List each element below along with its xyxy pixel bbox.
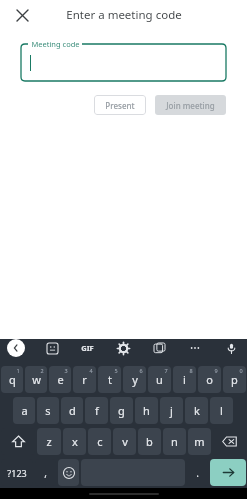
staticText: j xyxy=(170,403,173,418)
staticText: ?123 xyxy=(7,467,27,479)
button[interactable]: f xyxy=(85,397,108,424)
staticText: l xyxy=(220,403,223,418)
button[interactable]: y xyxy=(123,366,146,393)
button[interactable]: More options xyxy=(186,339,204,357)
staticText: 2 xyxy=(40,367,44,374)
button[interactable]: e xyxy=(49,366,71,393)
staticText: t xyxy=(108,372,112,387)
button[interactable]: o xyxy=(198,366,221,393)
button[interactable]: h xyxy=(135,397,158,424)
staticText: f xyxy=(95,403,99,418)
button[interactable]: Close xyxy=(8,1,36,29)
staticText: d xyxy=(69,403,76,418)
staticText: 7 xyxy=(164,367,168,374)
staticText: x xyxy=(72,434,78,449)
staticText: , xyxy=(44,466,47,480)
staticText: 6 xyxy=(139,367,143,374)
button[interactable]: t xyxy=(98,366,121,393)
staticText: i xyxy=(183,372,186,387)
staticText: r xyxy=(82,372,87,387)
button[interactable]: Join meeting xyxy=(155,95,226,115)
button[interactable]: GIF xyxy=(79,341,96,355)
staticText: k xyxy=(194,403,200,418)
staticText: Enter a meeting code xyxy=(66,7,182,23)
staticText: 0 xyxy=(239,367,243,374)
button[interactable]: Voice input xyxy=(222,339,240,357)
staticText: 1 xyxy=(16,367,20,374)
button[interactable]: k xyxy=(185,397,208,424)
button[interactable]: Emoji xyxy=(58,459,79,486)
button[interactable]: d xyxy=(61,397,83,424)
button[interactable]: Backspace xyxy=(213,428,246,455)
button[interactable]: Symbols xyxy=(1,459,33,486)
staticText: s xyxy=(45,403,51,418)
staticText: n xyxy=(171,434,178,449)
button[interactable]: Period xyxy=(187,459,208,486)
staticText: h xyxy=(143,403,150,418)
staticText: b xyxy=(146,434,153,449)
button[interactable]: Sticker xyxy=(43,339,61,357)
staticText: p xyxy=(231,372,238,387)
button[interactable]: Settings xyxy=(114,339,132,357)
button[interactable]: v xyxy=(113,428,136,455)
button[interactable]: Enter xyxy=(210,459,246,486)
staticText: v xyxy=(122,434,128,449)
button[interactable]: c xyxy=(88,428,111,455)
staticText: 5 xyxy=(114,367,118,374)
staticText: o xyxy=(206,372,213,387)
staticText: y xyxy=(132,372,138,387)
staticText: a xyxy=(21,403,28,418)
button[interactable]: Present xyxy=(94,95,146,115)
button[interactable]: Shift xyxy=(1,428,35,455)
staticText: w xyxy=(32,372,41,387)
staticText: 8 xyxy=(189,367,193,374)
button[interactable]: z xyxy=(37,428,61,455)
staticText: Meeting code xyxy=(31,39,80,49)
button[interactable]: u xyxy=(148,366,171,393)
button[interactable]: m xyxy=(188,428,211,455)
staticText: GIF xyxy=(81,343,94,353)
button[interactable]: Comma xyxy=(35,459,56,486)
button[interactable]: w xyxy=(25,366,47,393)
staticText: c xyxy=(97,434,103,449)
button[interactable]: g xyxy=(110,397,133,424)
button[interactable]: b xyxy=(138,428,161,455)
button[interactable]: q xyxy=(1,366,23,393)
staticText: 4 xyxy=(89,367,93,374)
button[interactable]: Back xyxy=(7,339,25,357)
staticText: Join meeting xyxy=(166,100,215,111)
button[interactable]: l xyxy=(210,397,233,424)
staticText: 3 xyxy=(64,367,68,374)
button[interactable]: n xyxy=(163,428,186,455)
staticText: . xyxy=(196,466,199,480)
button[interactable]: Translate xyxy=(150,339,168,357)
button[interactable]: i xyxy=(173,366,196,393)
staticText: q xyxy=(9,372,16,387)
staticText: 9 xyxy=(214,367,218,374)
button[interactable]: a xyxy=(13,397,35,424)
staticText: Present xyxy=(105,100,135,111)
staticText: m xyxy=(194,434,205,449)
staticText: z xyxy=(46,434,52,449)
button[interactable]: x xyxy=(63,428,86,455)
staticText: e xyxy=(57,372,64,387)
button[interactable]: r xyxy=(73,366,96,393)
button[interactable]: s xyxy=(37,397,59,424)
button[interactable]: p xyxy=(223,366,246,393)
staticText: u xyxy=(156,372,163,387)
staticText: g xyxy=(118,403,125,418)
button[interactable]: j xyxy=(160,397,183,424)
